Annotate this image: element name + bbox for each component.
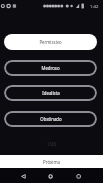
staticText: Obstinado [40, 116, 62, 122]
button[interactable]: Permissivo [4, 34, 97, 50]
staticText: Medroso [41, 65, 60, 71]
button[interactable]: Idealista [4, 85, 97, 101]
staticText: Idealista [42, 90, 60, 96]
button[interactable]: Back [16, 168, 31, 183]
staticText: 1:42 [90, 4, 99, 10]
button[interactable]: Home [43, 168, 58, 183]
button[interactable]: Medroso [4, 60, 97, 76]
staticText: 1/26 [0, 141, 103, 147]
staticText: Permissivo [39, 39, 62, 45]
button[interactable]: Obstinado [4, 111, 97, 127]
button[interactable]: Próxima [0, 155, 103, 168]
staticText: Próxima [43, 159, 60, 165]
button[interactable]: Recent apps [71, 168, 86, 183]
